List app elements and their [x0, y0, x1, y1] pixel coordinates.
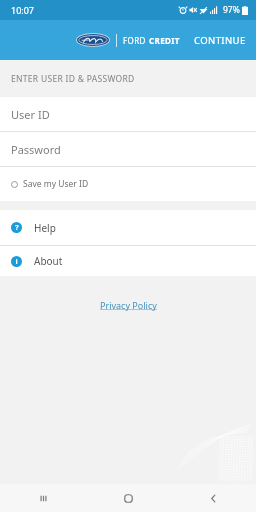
staticText: 10:07: [11, 4, 35, 16]
button[interactable]: User ID: [0, 97, 256, 131]
button[interactable]: Home: [86, 484, 171, 512]
button[interactable]: i: [0, 246, 256, 276]
staticText: ?: [15, 223, 19, 233]
button[interactable]: Save my User ID: [0, 167, 256, 201]
button[interactable]: Recent apps: [0, 484, 86, 512]
staticText: Help: [34, 221, 56, 235]
other: Ford logo: [76, 33, 110, 47]
staticText: ENTER USER ID & PASSWORD: [11, 73, 135, 85]
staticText: 97%: [223, 4, 240, 16]
button[interactable]: Password: [0, 132, 256, 166]
staticText: CREDIT: [149, 35, 180, 46]
button[interactable]: Privacy Policy: [94, 293, 163, 317]
button[interactable]: CONTINUE: [184, 26, 256, 55]
staticText: Save my User ID: [23, 178, 89, 190]
staticText: About: [34, 254, 63, 268]
staticText: CONTINUE: [194, 34, 246, 47]
staticText: FORD: [123, 35, 149, 46]
button[interactable]: Back: [171, 484, 256, 512]
staticText: Privacy Policy: [100, 299, 157, 311]
staticText: i: [15, 257, 18, 267]
staticText: User ID: [11, 107, 50, 122]
button[interactable]: ?: [0, 210, 256, 245]
staticText: Password: [11, 142, 61, 157]
